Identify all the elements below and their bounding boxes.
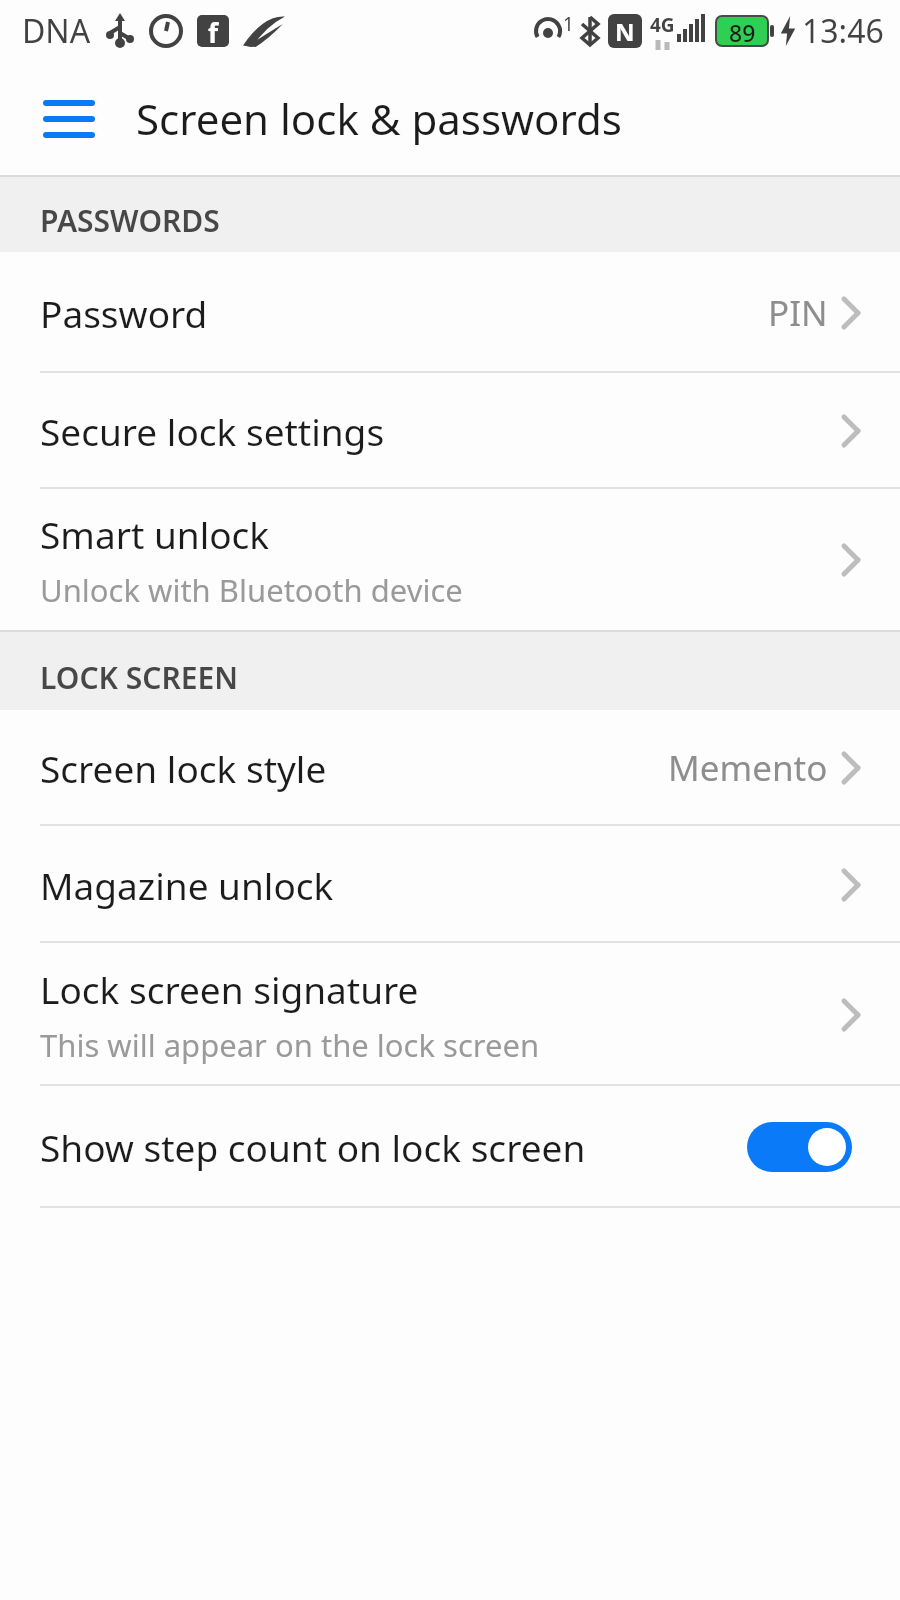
staticText: Magazine unlock — [40, 860, 334, 910]
button[interactable] — [46, 100, 92, 138]
staticText: DNA — [22, 9, 91, 53]
button[interactable] — [747, 1122, 852, 1172]
staticText: 4G — [650, 12, 675, 38]
button[interactable]: Password — [0, 252, 900, 373]
button[interactable]: Secure lock settings — [0, 373, 900, 489]
button[interactable]: Magazine unlock — [0, 826, 900, 943]
staticText: Smart unlock — [40, 509, 270, 559]
staticText: Secure lock settings — [40, 406, 385, 456]
staticText: Screen lock style — [40, 743, 327, 793]
button[interactable]: Screen lock style — [0, 710, 900, 826]
staticText: f — [208, 15, 219, 47]
button[interactable]: Smart unlock — [0, 489, 900, 630]
button[interactable]: Show step count on lock screen — [0, 1086, 900, 1208]
staticText: 13:46 — [802, 9, 884, 53]
staticText: This will appear on the lock screen — [40, 1024, 540, 1066]
staticText: Unlock with Bluetooth device — [40, 569, 463, 611]
button[interactable]: Lock screen signature — [0, 943, 900, 1086]
staticText: Show step count on lock screen — [40, 1122, 747, 1172]
staticText: 1 — [563, 11, 574, 37]
staticText: PASSWORDS — [40, 200, 220, 241]
staticText: LOCK SCREEN — [40, 657, 238, 698]
staticText: Lock screen signature — [40, 964, 419, 1014]
staticText: Password — [40, 288, 208, 338]
staticText: Screen lock & passwords — [136, 90, 622, 147]
staticText: N — [615, 15, 635, 48]
staticText: PIN — [768, 289, 828, 337]
staticText: Memento — [668, 744, 828, 792]
staticText: 89 — [729, 17, 756, 45]
